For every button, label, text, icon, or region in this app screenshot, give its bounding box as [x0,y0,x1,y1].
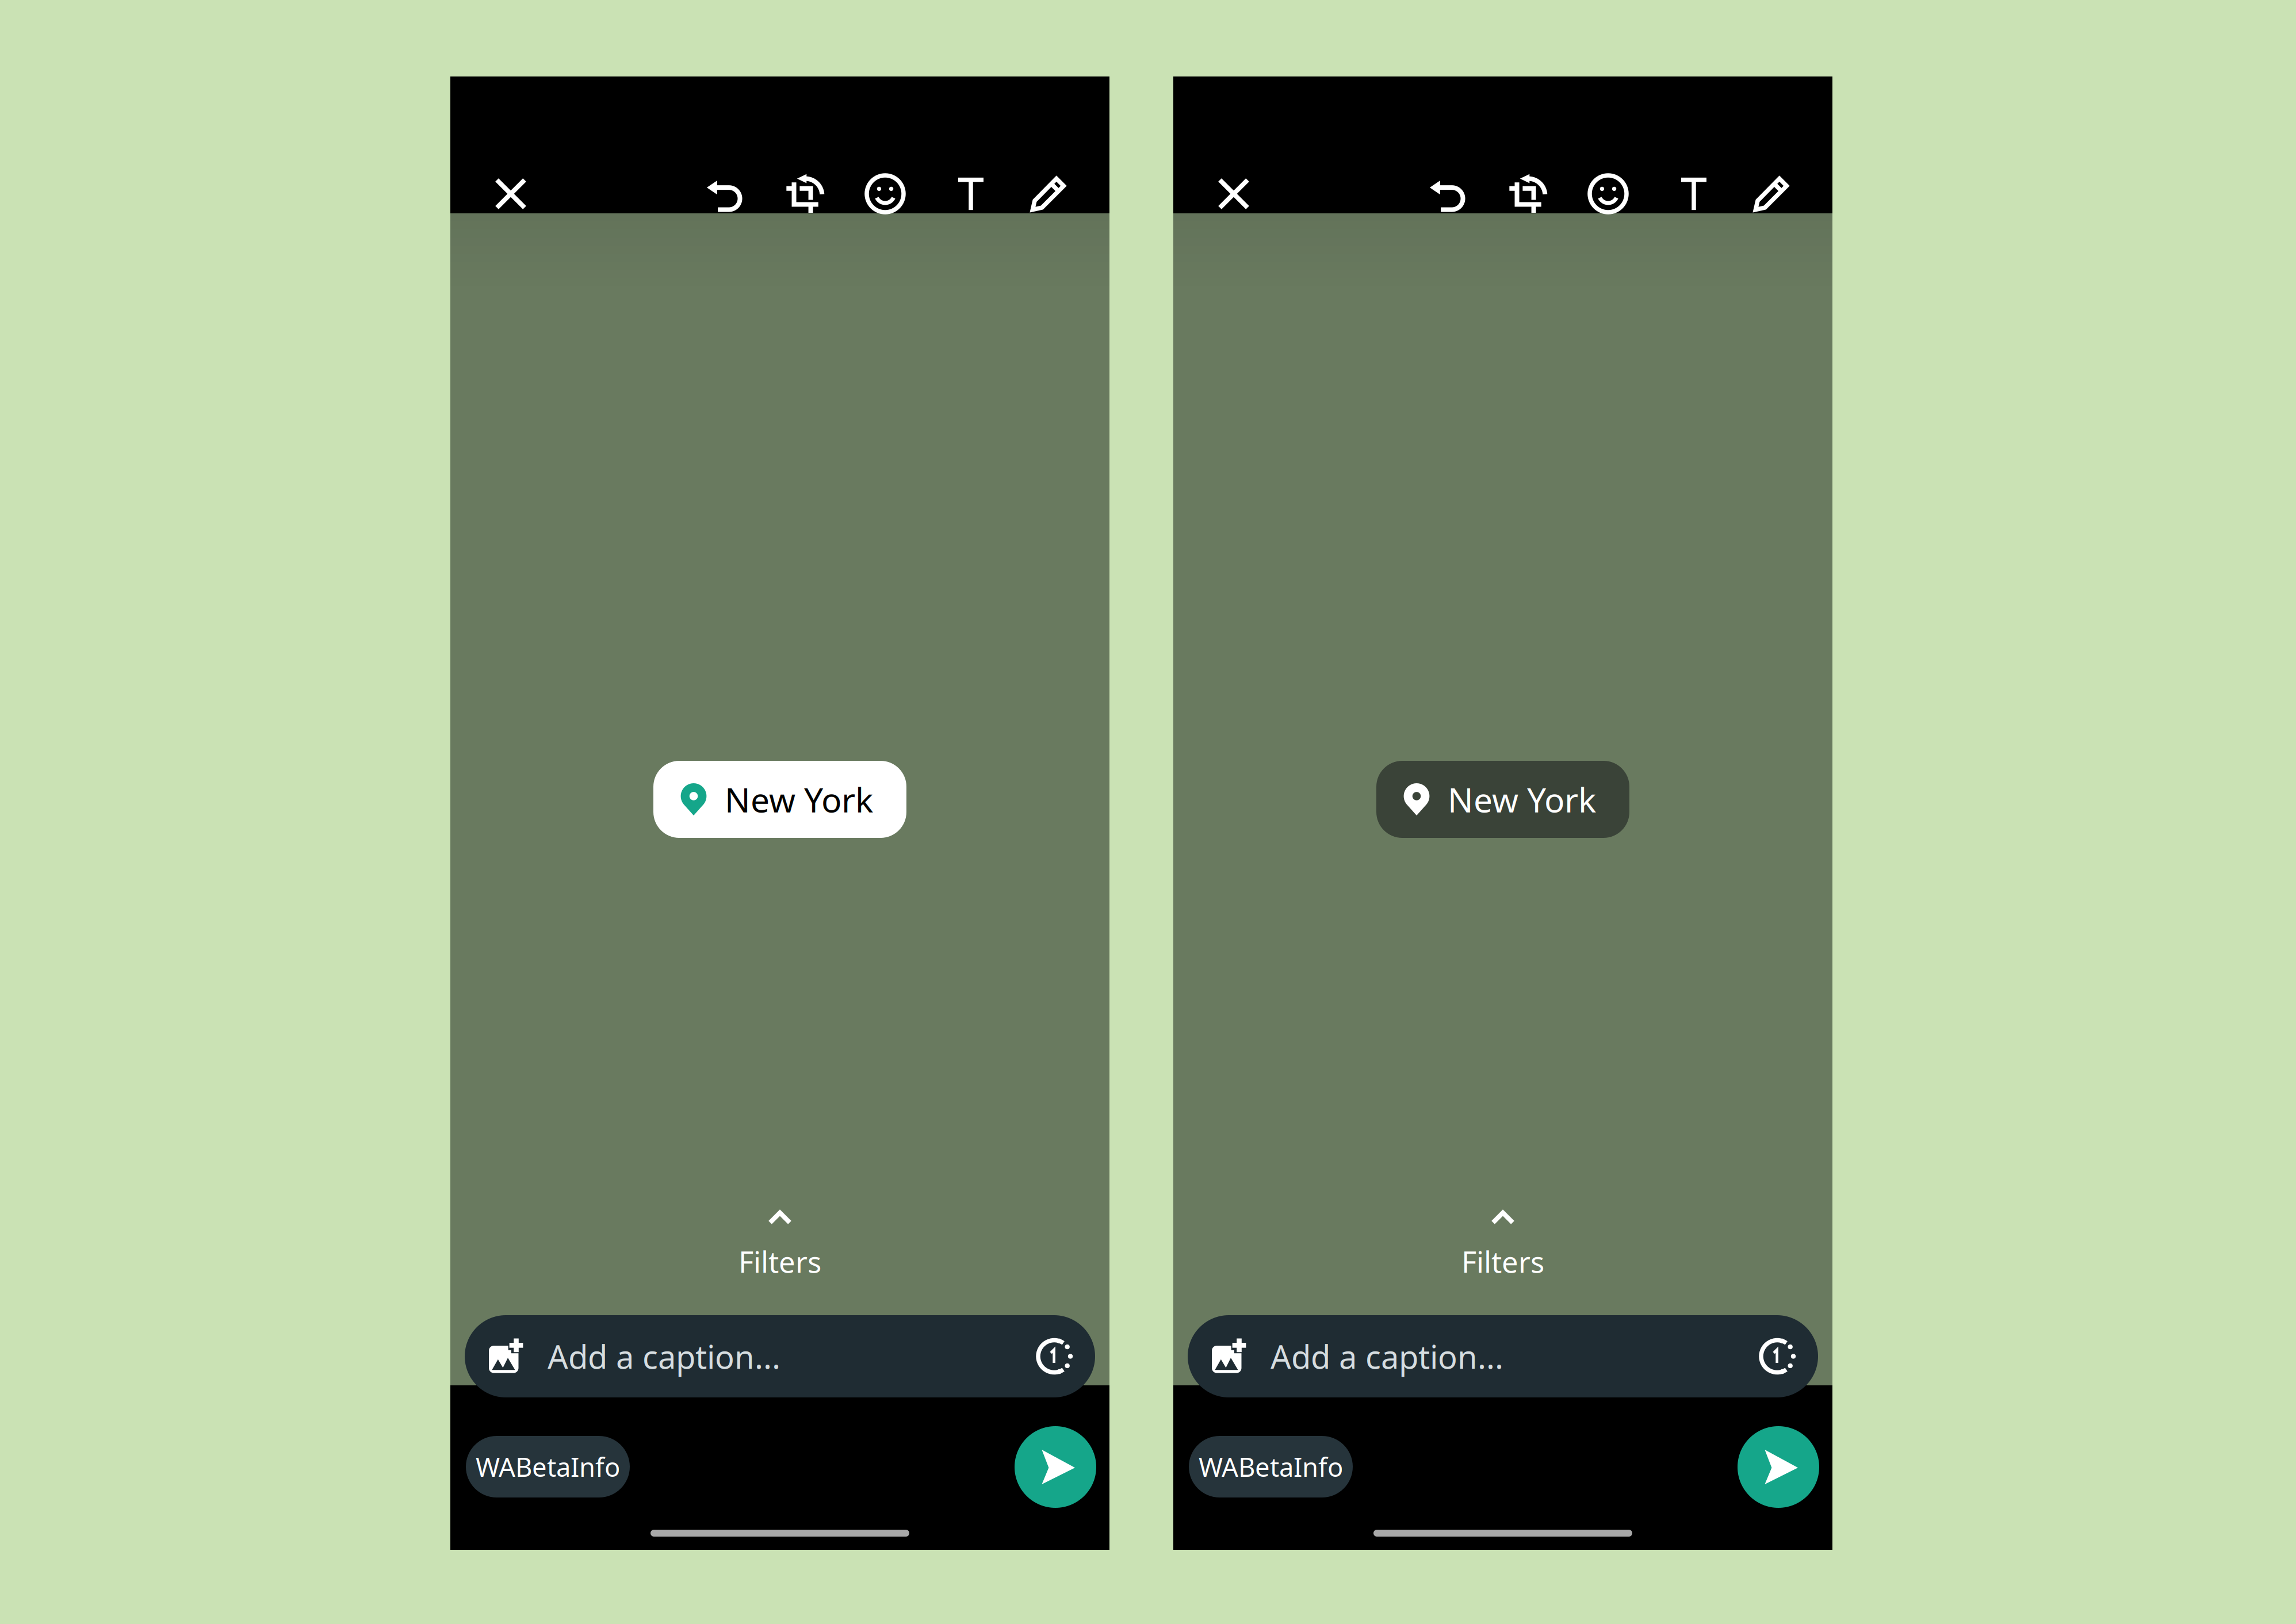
staticText: Filters [738,1242,821,1281]
button[interactable]: Add text [1666,166,1721,221]
staticText: Filters [1461,1242,1544,1281]
staticText: New York [725,777,873,822]
button[interactable]: Close [1206,166,1261,221]
button[interactable]: Send [1015,1426,1096,1508]
staticText: Add a caption... [548,1335,780,1378]
button[interactable]: Add a caption... [1188,1315,1818,1397]
button[interactable]: Send [1738,1426,1819,1508]
button[interactable]: Stickers [858,166,913,221]
button[interactable]: Draw [1021,166,1076,221]
button[interactable]: WABetaInfo [1189,1436,1353,1497]
staticText: New York [1448,777,1596,822]
button[interactable]: Close [483,166,538,221]
staticText: WABetaInfo [476,1449,620,1484]
button[interactable]: Undo [697,166,752,221]
button[interactable]: Filters [1173,1192,1832,1301]
staticText: WABetaInfo [1199,1449,1343,1484]
button[interactable]: Add a caption... [465,1315,1095,1397]
button[interactable]: Stickers [1581,166,1636,221]
button[interactable]: New York [1376,761,1629,838]
staticText: Add a caption... [1271,1335,1503,1378]
button[interactable]: Crop and rotate [1500,166,1555,221]
button[interactable]: New York [653,761,906,838]
button[interactable]: Filters [450,1192,1109,1301]
button[interactable]: WABetaInfo [466,1436,630,1497]
button[interactable]: Add text [943,166,998,221]
button[interactable]: Draw [1744,166,1799,221]
button[interactable]: Crop and rotate [777,166,832,221]
button[interactable]: Undo [1419,166,1475,221]
